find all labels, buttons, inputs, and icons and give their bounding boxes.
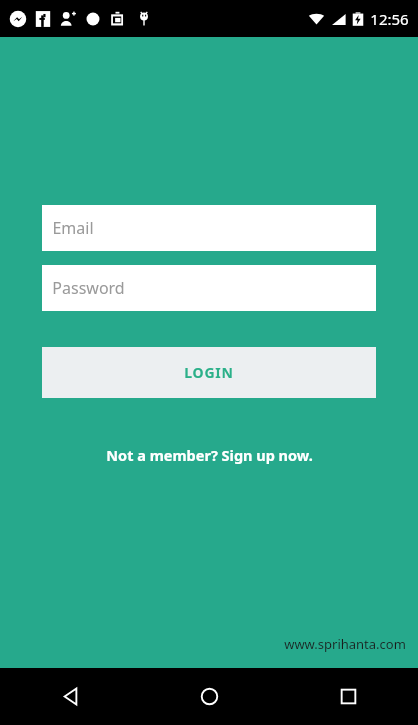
staticText: 12:56: [370, 9, 409, 29]
button[interactable]: Recent apps: [279, 668, 418, 725]
staticText: LOGIN: [184, 363, 234, 382]
button[interactable]: Email: [42, 205, 376, 251]
button[interactable]: Back: [0, 668, 140, 725]
button[interactable]: LOGIN: [42, 347, 376, 398]
button[interactable]: Home: [140, 668, 279, 725]
staticText: Not a member? Sign up now.: [106, 445, 313, 465]
staticText: Password: [52, 277, 125, 299]
staticText: www.sprihanta.com: [284, 635, 406, 653]
button[interactable]: Password: [42, 265, 376, 311]
staticText: Email: [52, 217, 94, 239]
button[interactable]: Not a member? Sign up now.: [102, 443, 317, 467]
